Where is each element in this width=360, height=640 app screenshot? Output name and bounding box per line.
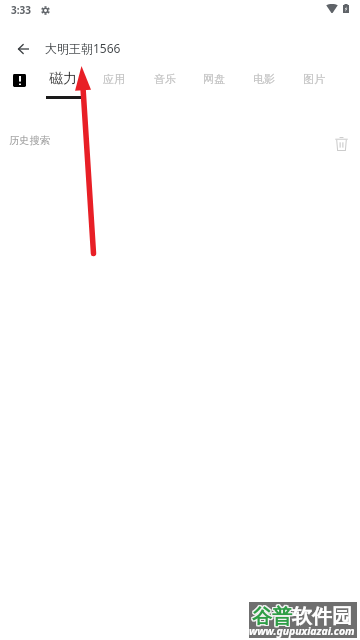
staticText: 谷普 (253, 604, 293, 629)
staticText: 谷普 (253, 603, 293, 628)
button[interactable]: Warning (13, 74, 26, 87)
staticText: 谷普 (252, 603, 292, 628)
staticText: 大明王朝1566 (45, 40, 121, 56)
staticText: 谷普 (252, 604, 292, 629)
staticText: 3:33 (11, 3, 31, 17)
staticText: 音乐 (154, 72, 176, 86)
button[interactable]: 应用 (91, 65, 137, 101)
staticText: 谷普 (253, 605, 293, 630)
staticText: 图片 (303, 72, 325, 86)
button[interactable]: Back (10, 36, 36, 62)
staticText: 历史搜索 (9, 134, 51, 147)
button[interactable]: 音乐 (142, 65, 188, 101)
button[interactable]: 图片 (291, 65, 337, 101)
staticText: 谷普 (251, 605, 291, 630)
staticText: 谷普 (251, 604, 291, 629)
staticText: 软件园 (292, 604, 352, 629)
staticText: 磁力 (49, 70, 77, 88)
button[interactable]: 磁力 (40, 65, 86, 101)
staticText: 网盘 (203, 72, 225, 86)
staticText: 应用 (103, 72, 125, 86)
staticText: 谷普 (252, 605, 292, 630)
button[interactable]: 电影 (241, 65, 287, 101)
staticText: www.gupuxiazai.com (249, 624, 355, 638)
button[interactable]: 网盘 (191, 65, 237, 101)
button[interactable]: Clear history (331, 133, 352, 154)
staticText: 谷普 (251, 603, 291, 628)
staticText: 电影 (253, 72, 275, 86)
